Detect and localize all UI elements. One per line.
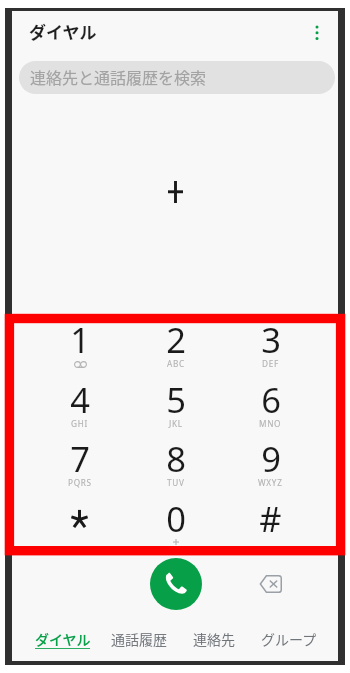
button[interactable]: Phone number xyxy=(12,161,338,231)
staticText: 通話履歴 xyxy=(111,629,167,649)
staticText: 3 xyxy=(261,316,281,363)
staticText: TUV xyxy=(167,477,185,488)
staticText: WXYZ xyxy=(258,477,283,488)
staticText: 4 xyxy=(70,376,90,423)
button[interactable]: Delete xyxy=(250,564,290,604)
staticText: DEF xyxy=(262,358,279,369)
staticText: 9 xyxy=(261,435,281,482)
staticText: 0 xyxy=(166,495,186,542)
staticText: ダイヤル xyxy=(35,629,91,649)
staticText: 8 xyxy=(166,435,186,482)
staticText: GHI xyxy=(71,418,88,429)
button[interactable]: 通話履歴 xyxy=(101,621,176,661)
staticText: 5 xyxy=(166,376,186,423)
button[interactable]: 7 xyxy=(32,435,127,492)
staticText: 6 xyxy=(261,376,281,423)
button[interactable]: 8 xyxy=(128,435,223,492)
button[interactable]: 6 xyxy=(223,376,318,433)
staticText: # xyxy=(259,495,282,542)
button[interactable]: 連絡先と通話履歴を検索 xyxy=(19,61,335,94)
staticText: ABC xyxy=(167,358,185,369)
button[interactable] xyxy=(32,495,127,552)
staticText: 2 xyxy=(166,316,186,363)
button[interactable]: 2 xyxy=(128,316,223,373)
button[interactable]: 0 xyxy=(128,495,223,552)
button[interactable]: # xyxy=(223,495,318,552)
staticText: MNO xyxy=(259,418,282,429)
button[interactable]: 3 xyxy=(223,316,318,373)
button[interactable]: グループ xyxy=(251,621,326,661)
button[interactable]: 1 xyxy=(32,316,127,373)
button[interactable]: Call xyxy=(150,558,202,610)
button[interactable]: 4 xyxy=(32,376,127,433)
button[interactable]: ダイヤル xyxy=(25,621,101,661)
staticText: 連絡先と通話履歴を検索 xyxy=(30,65,207,88)
button[interactable]: 9 xyxy=(223,435,318,492)
staticText: JKL xyxy=(169,418,183,429)
button[interactable]: 5 xyxy=(128,376,223,433)
staticText: グループ xyxy=(261,629,317,649)
staticText: ダイヤル xyxy=(29,19,97,44)
staticText: 1 xyxy=(70,316,90,363)
button[interactable]: More options xyxy=(297,11,337,51)
staticText: 7 xyxy=(70,435,90,482)
staticText: PQRS xyxy=(68,477,92,488)
button[interactable]: 連絡先 xyxy=(176,621,251,661)
staticText: 連絡先 xyxy=(193,629,235,649)
